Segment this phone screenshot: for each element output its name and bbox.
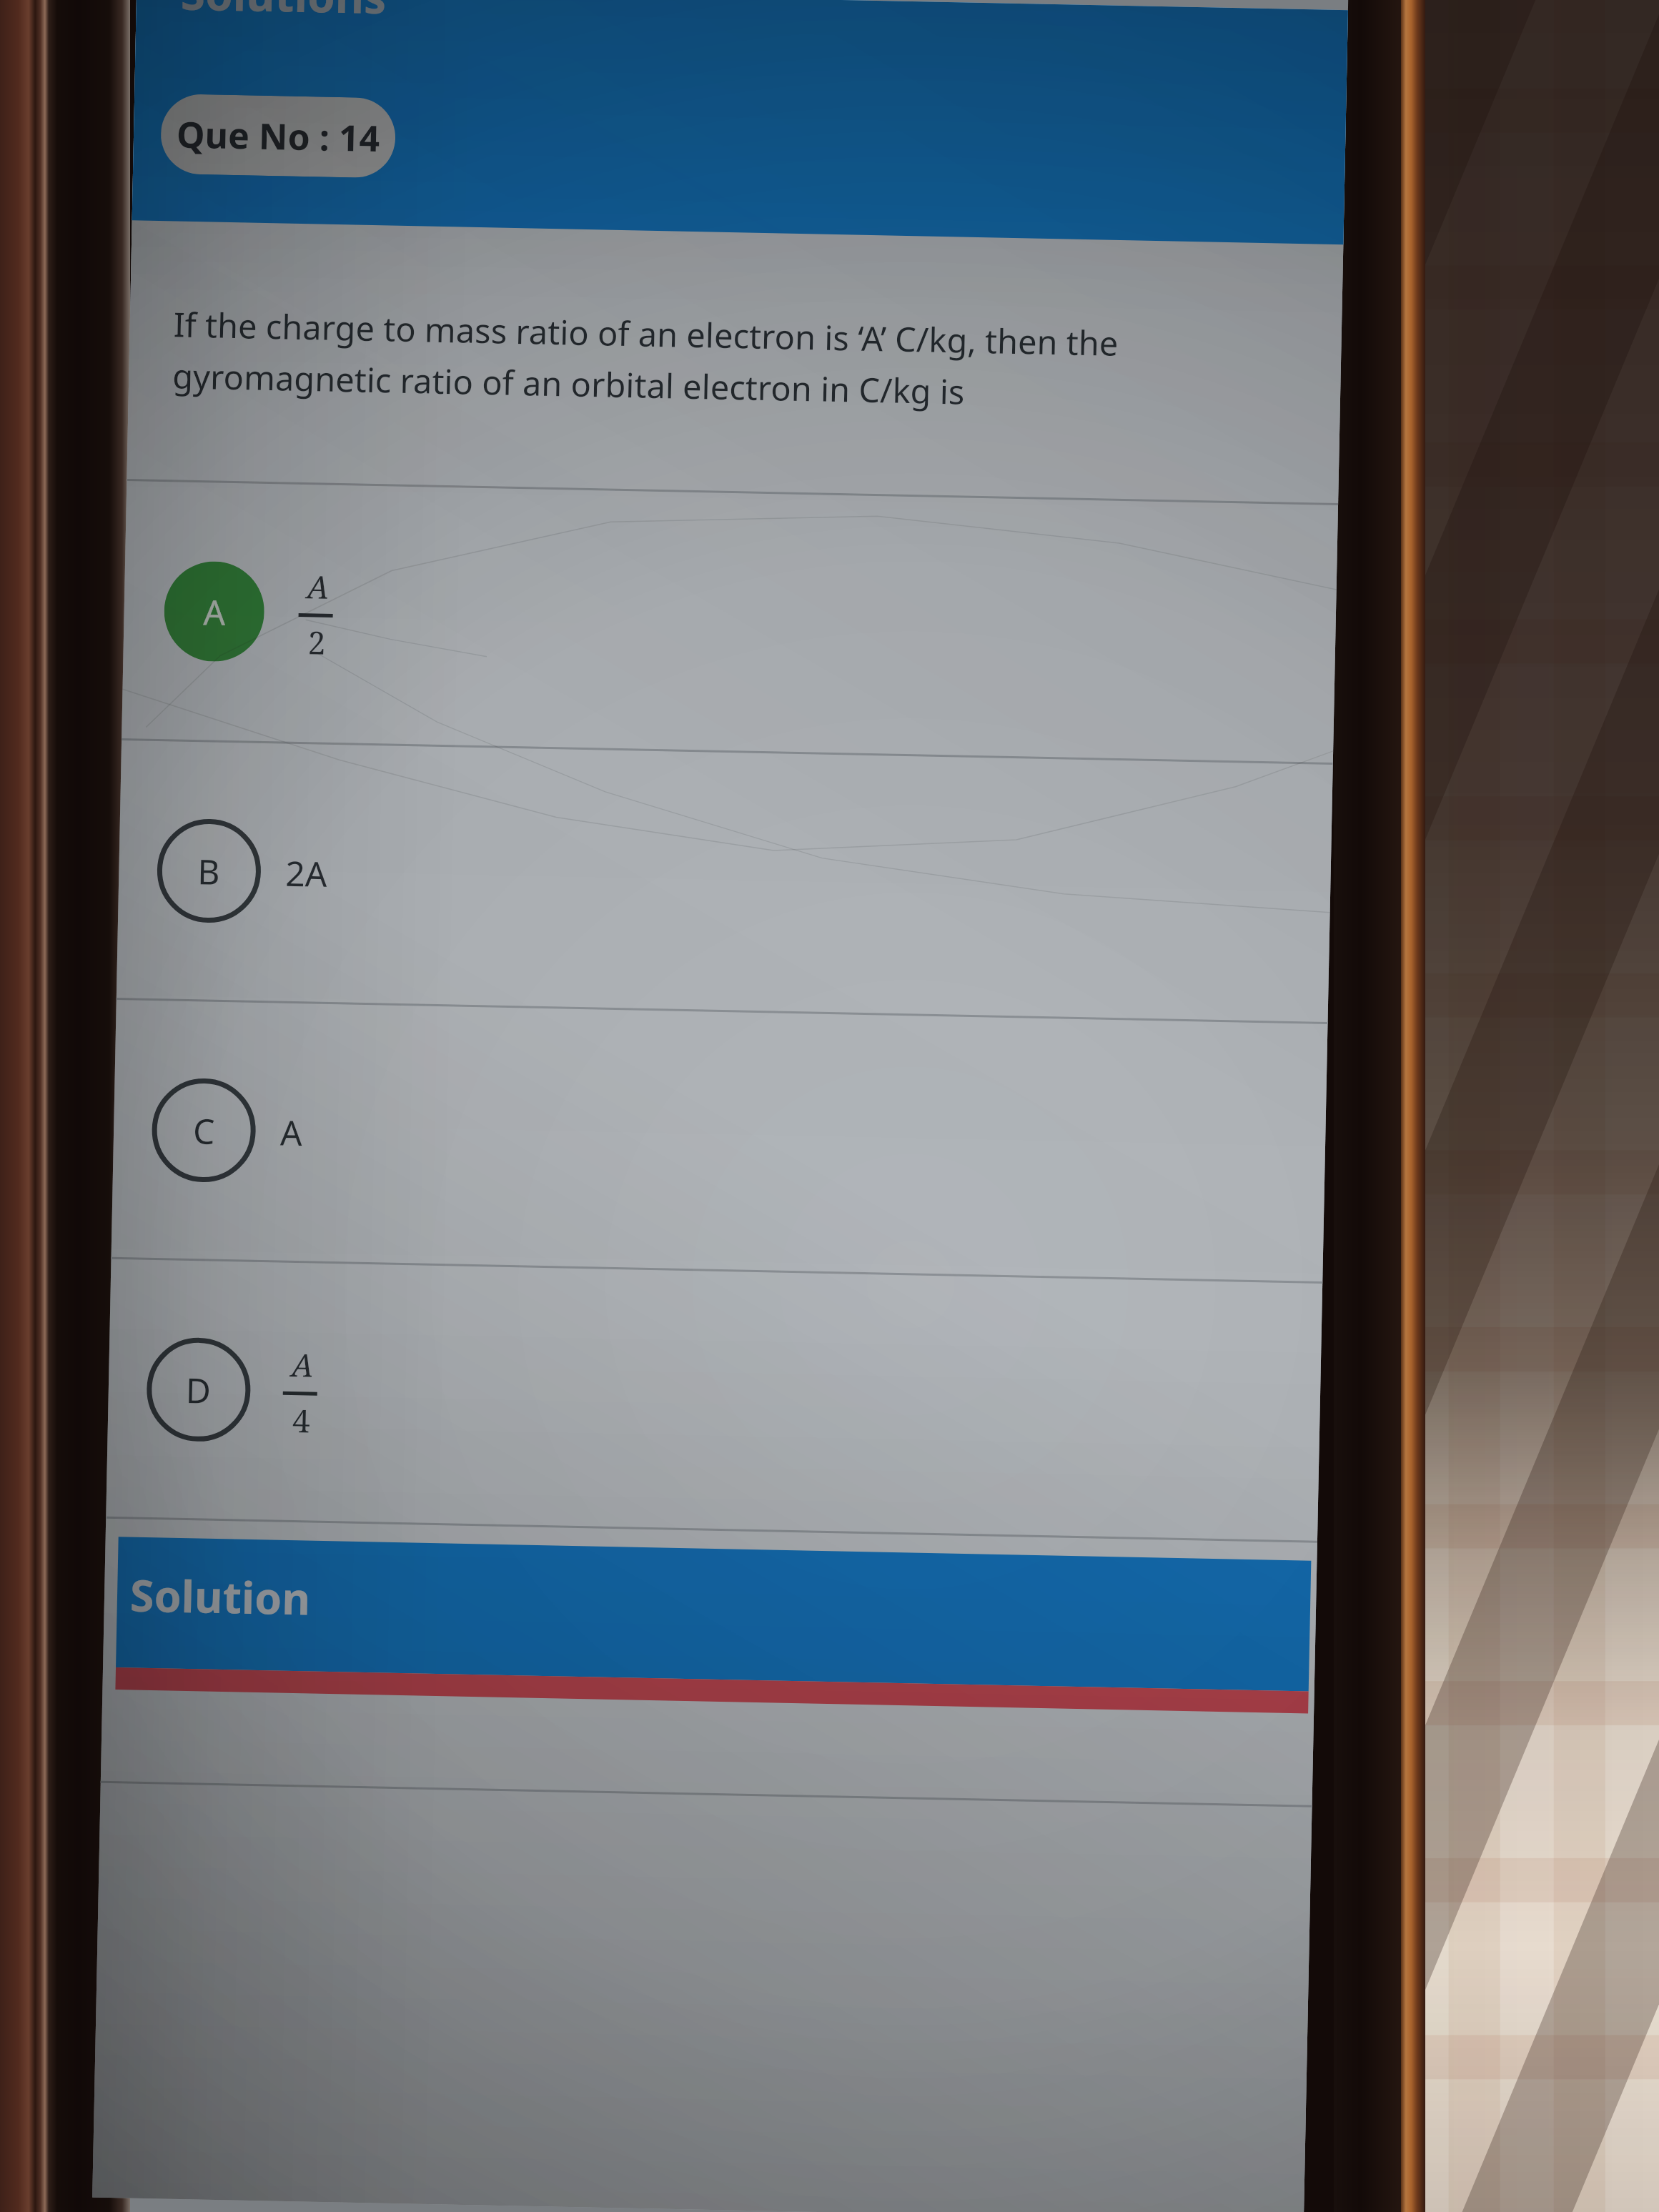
- staticText: A: [280, 1109, 303, 1156]
- staticText: A: [203, 588, 226, 635]
- staticText: Solution: [130, 1565, 312, 1628]
- staticText: A: [306, 565, 330, 608]
- staticText: B: [197, 848, 221, 895]
- staticText: 2: [308, 621, 326, 664]
- staticText: Que No : 14: [176, 110, 381, 162]
- staticText: Solutions: [180, 0, 387, 27]
- button[interactable]: Solution: [115, 1537, 1311, 1714]
- staticText: D: [185, 1367, 212, 1413]
- staticText: If the charge to mass ratio of an electr…: [172, 301, 1119, 417]
- staticText: 2A: [285, 850, 328, 897]
- staticText: A: [291, 1343, 315, 1386]
- staticText: C: [193, 1107, 216, 1154]
- button[interactable]: A: [122, 481, 1338, 763]
- button[interactable]: B: [116, 740, 1333, 1022]
- button[interactable]: D: [106, 1259, 1322, 1541]
- staticText: 4: [292, 1399, 311, 1442]
- button[interactable]: C: [111, 1000, 1328, 1281]
- button[interactable]: Que No : 14: [160, 94, 396, 178]
